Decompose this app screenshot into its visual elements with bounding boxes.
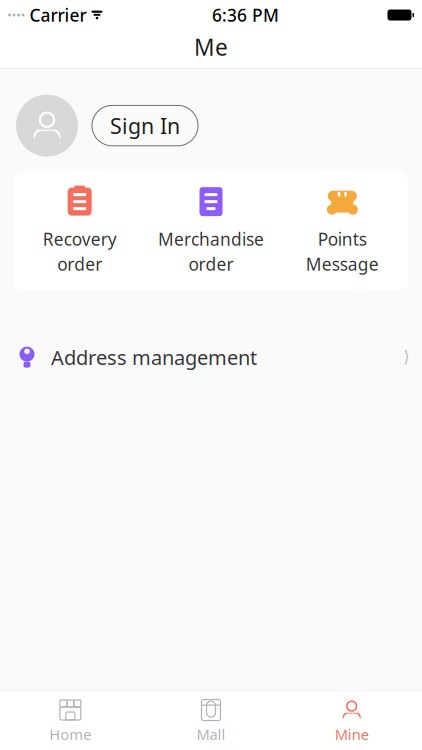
button[interactable]: Merchandise (145, 172, 277, 290)
button[interactable]: Points (277, 172, 408, 290)
staticText: order (188, 253, 233, 276)
staticText: Message (306, 253, 379, 276)
button[interactable]: Address management (0, 332, 422, 383)
staticText: 6:36 PM (212, 3, 279, 26)
staticText: Recovery (43, 228, 117, 251)
staticText: Points (318, 228, 367, 251)
staticText: Mine (335, 724, 369, 744)
button[interactable]: Sign In (92, 105, 198, 146)
button[interactable]: Home (0, 691, 141, 750)
staticText: Home (49, 724, 91, 744)
staticText: Me (194, 32, 228, 62)
staticText: Sign In (110, 111, 180, 140)
staticText: Merchandise (158, 228, 264, 251)
staticText: order (57, 253, 102, 276)
button[interactable]: Recovery (14, 172, 145, 290)
staticText: Carrier (29, 3, 86, 26)
staticText: Address management (51, 344, 257, 370)
button[interactable]: Mall (141, 691, 281, 750)
button[interactable]: Mine (281, 691, 422, 750)
staticText: Mall (196, 724, 225, 744)
button[interactable]: Profile photo (16, 95, 78, 157)
